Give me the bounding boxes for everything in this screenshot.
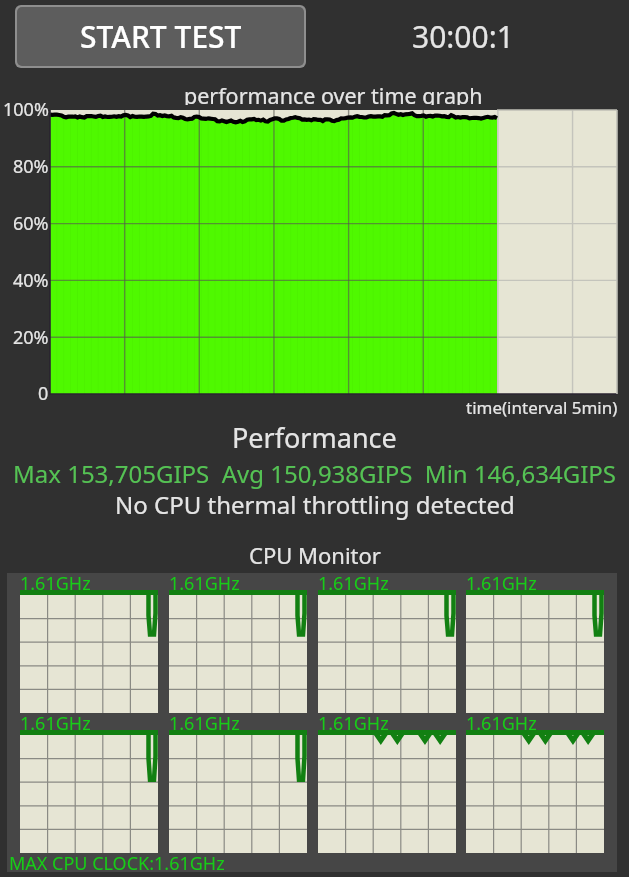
staticText: MAX CPU CLOCK:1.61GHz [9,851,225,873]
button[interactable]: 1.61GHz [20,711,158,853]
staticText: 100% [3,97,49,122]
button[interactable]: 1.61GHz [466,571,604,713]
staticText: 1.61GHz [318,711,389,731]
staticText: CPU Monitor [249,540,381,566]
staticText: 1.61GHz [169,571,240,591]
staticText: Max 153,705GIPS Avg 150,938GIPS Min 146,… [13,457,616,489]
button[interactable]: 1.61GHz [20,571,158,713]
staticText: 1.61GHz [169,711,240,731]
staticText: 1.61GHz [466,571,537,591]
button[interactable]: START TEST [17,7,304,66]
staticText: 30:00:1 [412,16,514,57]
button[interactable]: 1.61GHz [169,711,307,853]
button[interactable]: 1.61GHz [466,711,604,853]
staticText: 40% [13,268,49,293]
staticText: 0 [38,381,49,406]
button[interactable]: 1.61GHz [318,571,456,713]
staticText: 60% [13,211,49,236]
staticText: time(interval 5min) [466,396,618,419]
button[interactable]: 1.61GHz [169,571,307,713]
staticText: START TEST [80,16,242,57]
staticText: 80% [13,154,49,179]
staticText: 1.61GHz [20,571,91,591]
staticText: No CPU thermal throttling detected [115,488,515,520]
staticText: performance over time graph [184,81,483,105]
button[interactable]: 1.61GHz [318,711,456,853]
staticText: 20% [13,325,49,350]
staticText: Performance [232,419,397,453]
staticText: 1.61GHz [20,711,91,731]
staticText: 1.61GHz [318,571,389,591]
staticText: 1.61GHz [466,711,537,731]
